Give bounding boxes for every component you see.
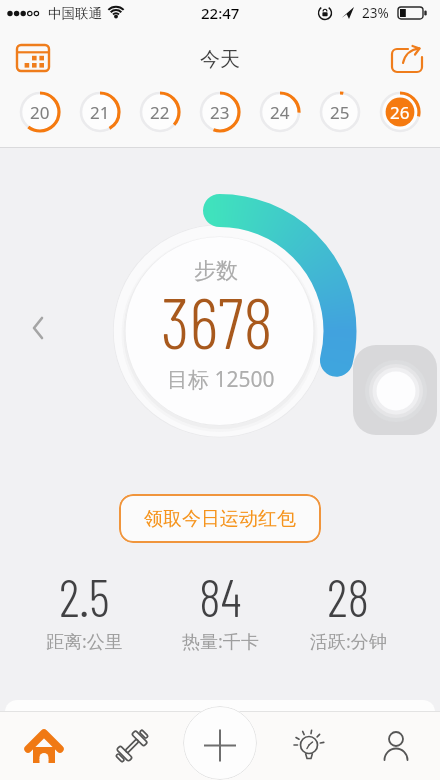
button[interactable] bbox=[102, 716, 162, 776]
staticText: 22 bbox=[150, 101, 170, 124]
button[interactable] bbox=[24, 312, 52, 346]
button[interactable] bbox=[353, 345, 437, 435]
button[interactable]: 领取今日运动红包 bbox=[119, 494, 321, 543]
staticText: 距离:公里 bbox=[46, 629, 123, 653]
staticText: 今天 bbox=[200, 47, 240, 72]
button[interactable]: 21 bbox=[79, 91, 121, 133]
staticText: 22:47 bbox=[201, 3, 240, 23]
button[interactable]: 23 bbox=[199, 91, 241, 133]
staticText: 84 bbox=[199, 565, 242, 621]
button[interactable]: 22 bbox=[139, 91, 181, 133]
staticText: 23% bbox=[362, 4, 389, 22]
button[interactable]: 20 bbox=[19, 91, 61, 133]
button[interactable] bbox=[183, 706, 257, 780]
button[interactable]: 24 bbox=[259, 91, 301, 133]
staticText: 活跃:分钟 bbox=[310, 629, 387, 653]
staticText: 21 bbox=[90, 101, 110, 124]
staticText: 20 bbox=[30, 101, 50, 124]
button[interactable]: 25 bbox=[319, 91, 361, 133]
button[interactable] bbox=[10, 38, 56, 80]
staticText: 26 bbox=[390, 101, 410, 124]
button[interactable] bbox=[14, 716, 74, 776]
staticText: 步数 bbox=[194, 257, 238, 285]
staticText: 领取今日运动红包 bbox=[144, 507, 296, 531]
button[interactable] bbox=[384, 41, 430, 81]
button[interactable] bbox=[278, 716, 338, 776]
staticText: 2.5 bbox=[59, 565, 110, 621]
button[interactable]: 26 bbox=[379, 91, 421, 133]
staticText: 目标 12500 bbox=[167, 365, 275, 392]
staticText: 23 bbox=[210, 101, 230, 124]
staticText: 3678 bbox=[161, 278, 273, 358]
staticText: 热量:千卡 bbox=[182, 629, 259, 653]
button[interactable] bbox=[366, 716, 426, 776]
staticText: 中国联通 bbox=[48, 5, 102, 22]
staticText: 24 bbox=[270, 101, 290, 124]
staticText: 28 bbox=[327, 565, 370, 621]
staticText: 25 bbox=[330, 101, 350, 124]
